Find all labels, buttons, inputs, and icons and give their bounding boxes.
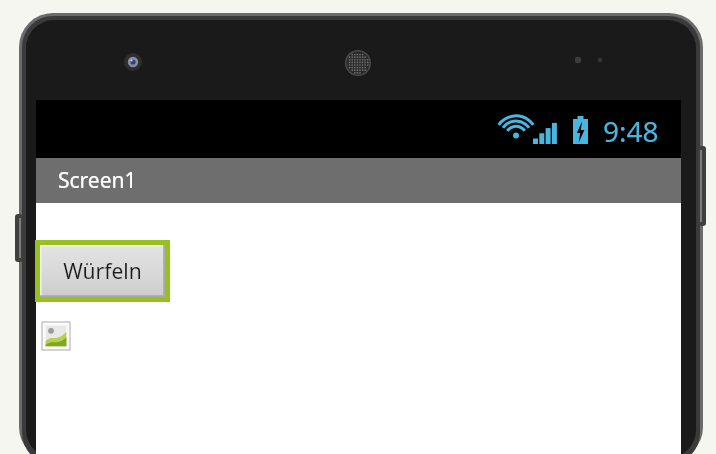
- button[interactable]: Screen1: [36, 158, 681, 203]
- button[interactable]: Image: [42, 322, 70, 350]
- staticText: Würfeln: [63, 257, 142, 286]
- staticText: 9:48: [603, 112, 659, 150]
- staticText: Screen1: [58, 166, 137, 195]
- button[interactable]: Würfeln: [35, 240, 170, 302]
